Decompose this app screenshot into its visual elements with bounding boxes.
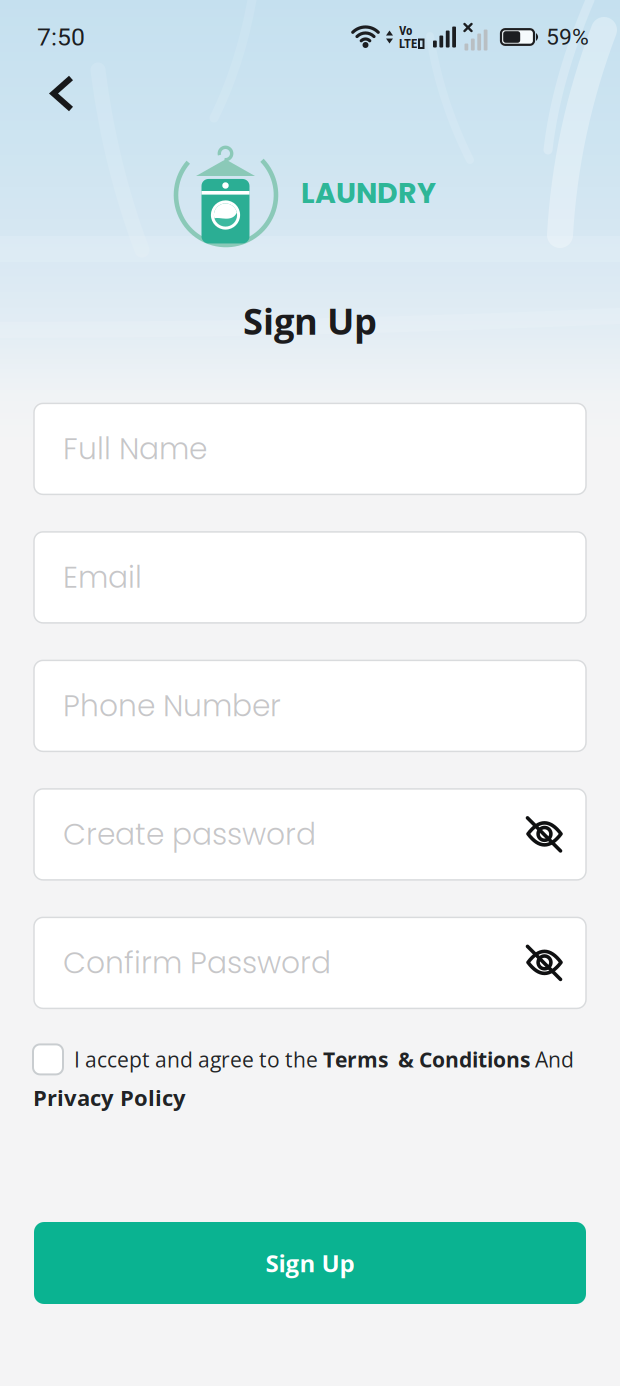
button[interactable]: Accept terms	[33, 1044, 63, 1074]
staticText: 7:50	[37, 22, 85, 52]
button[interactable]: Show password	[522, 813, 567, 855]
button[interactable]: Show password	[522, 942, 567, 984]
staticText: LTE	[399, 36, 417, 51]
staticText: LAUNDRY	[301, 173, 436, 213]
button[interactable]: Privacy Policy	[33, 1074, 186, 1112]
button[interactable]: Sign Up	[0, 1222, 620, 1304]
button[interactable]: Back	[0, 55, 94, 119]
staticText: Create password	[63, 814, 316, 855]
staticText: Sign Up	[265, 1247, 354, 1279]
staticText: 59%	[546, 24, 589, 50]
staticText: Full Name	[63, 428, 207, 470]
staticText: Phone Number	[63, 685, 281, 727]
staticText: Email	[63, 557, 142, 598]
staticText: Sign Up	[243, 296, 377, 345]
staticText: Vo	[399, 23, 412, 38]
staticText: Privacy Policy	[33, 1082, 186, 1112]
staticText: Confirm Password	[63, 942, 331, 984]
staticText: I accept and agree to the Terms & Condit…	[74, 1045, 574, 1073]
